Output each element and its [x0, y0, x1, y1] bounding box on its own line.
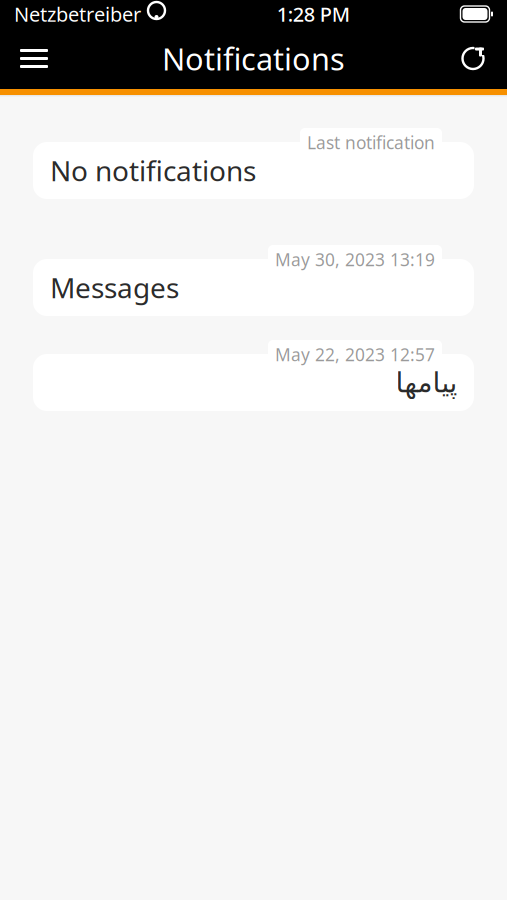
staticText: May 30, 2023 13:19: [275, 248, 435, 271]
button[interactable]: Menu: [8, 34, 60, 82]
staticText: Netzbetreiber: [14, 1, 141, 27]
button[interactable]: Refresh: [447, 34, 499, 82]
button[interactable]: No notifications: [0, 128, 507, 199]
staticText: 1:28 PM: [277, 1, 350, 27]
staticText: پیامها: [395, 367, 457, 398]
staticText: Notifications: [162, 38, 345, 79]
button[interactable]: Messages: [0, 245, 507, 316]
staticText: Messages: [50, 269, 179, 306]
staticText: Last notification: [307, 131, 435, 154]
button[interactable]: پیامها: [0, 340, 507, 411]
staticText: No notifications: [50, 152, 256, 189]
staticText: May 22, 2023 12:57: [275, 343, 435, 366]
